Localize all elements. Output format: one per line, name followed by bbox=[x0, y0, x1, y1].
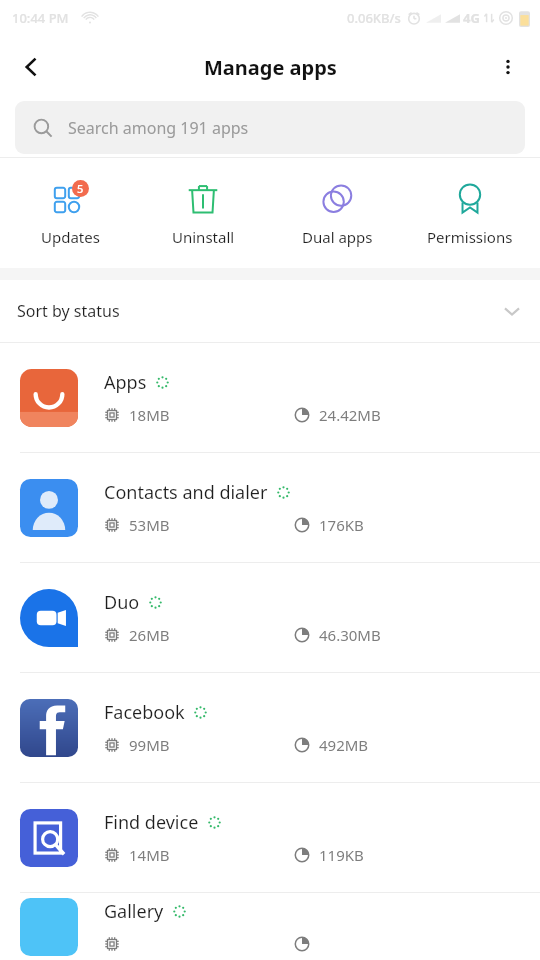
staticText: 46.30MB bbox=[319, 625, 381, 645]
staticText: 99MB bbox=[129, 735, 170, 755]
staticText: 0.06KB/s bbox=[347, 9, 401, 27]
staticText: 24.42MB bbox=[319, 405, 381, 425]
staticText: Uninstall bbox=[172, 227, 235, 247]
staticText: 14MB bbox=[129, 845, 170, 865]
button[interactable]: 5 bbox=[6, 158, 134, 268]
staticText: Facebook bbox=[104, 700, 185, 725]
staticText: 176KB bbox=[319, 515, 364, 535]
button[interactable]: Contacts and dialer bbox=[0, 453, 540, 562]
staticText: Contacts and dialer bbox=[104, 480, 268, 505]
button[interactable]: Find device bbox=[0, 783, 540, 892]
staticText: Updates bbox=[41, 227, 100, 247]
button[interactable]: Gallery bbox=[0, 893, 540, 960]
button[interactable]: Duo bbox=[0, 563, 540, 672]
staticText: 119KB bbox=[319, 845, 364, 865]
staticText: Apps bbox=[104, 370, 147, 395]
staticText: Permissions bbox=[427, 227, 513, 247]
staticText: Search among 191 apps bbox=[68, 117, 249, 139]
staticText: Gallery bbox=[104, 899, 164, 924]
button[interactable]: Permissions bbox=[406, 158, 534, 268]
button[interactable]: Back bbox=[8, 43, 56, 91]
staticText: 18MB bbox=[129, 405, 170, 425]
button[interactable]: Sort by status bbox=[0, 280, 540, 342]
button[interactable]: Dual apps bbox=[273, 158, 401, 268]
staticText: 492MB bbox=[319, 735, 369, 755]
button[interactable]: Uninstall bbox=[139, 158, 267, 268]
staticText: 26MB bbox=[129, 625, 170, 645]
staticText: Duo bbox=[104, 590, 140, 615]
staticText: Dual apps bbox=[302, 227, 373, 247]
staticText: 10:44 PM bbox=[12, 9, 69, 27]
staticText: Sort by status bbox=[17, 300, 120, 322]
staticText: Find device bbox=[104, 810, 199, 835]
button[interactable]: Apps bbox=[0, 343, 540, 452]
staticText: Manage apps bbox=[204, 54, 337, 81]
button[interactable]: Search among 191 apps bbox=[15, 101, 525, 154]
staticText: 4G bbox=[463, 9, 480, 27]
staticText: 5 bbox=[77, 181, 84, 196]
button[interactable]: More options bbox=[484, 43, 532, 91]
staticText: 53MB bbox=[129, 515, 170, 535]
button[interactable]: Facebook bbox=[0, 673, 540, 782]
